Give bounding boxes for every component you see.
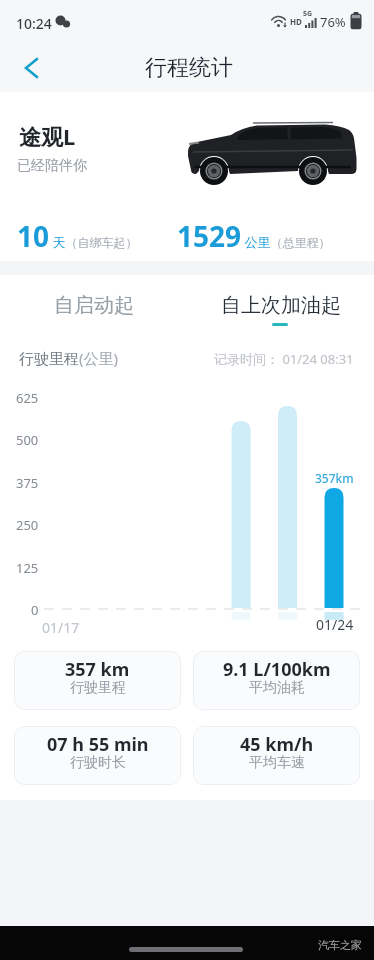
staticText: HD bbox=[290, 16, 302, 27]
staticText: 5G bbox=[303, 9, 313, 19]
button[interactable]: 自上次加油起 bbox=[187, 288, 374, 322]
staticText: 250 bbox=[16, 516, 39, 534]
staticText: 行驶里程(公里) bbox=[19, 348, 119, 368]
staticText: 625 bbox=[16, 389, 39, 407]
staticText: 平均车速 bbox=[249, 754, 305, 772]
staticText: 10:24 bbox=[16, 14, 52, 33]
staticText: 途观L bbox=[19, 121, 76, 151]
staticText: 125 bbox=[16, 559, 39, 577]
button[interactable] bbox=[16, 52, 46, 84]
staticText: 45 km/h bbox=[240, 732, 314, 757]
button[interactable]: 自启动起 bbox=[0, 288, 187, 322]
staticText: 行驶时长 bbox=[70, 754, 126, 772]
staticText: 自启动起 bbox=[54, 293, 134, 318]
staticText: 10 天（自绑车起） bbox=[17, 217, 138, 255]
staticText: 01/24 bbox=[316, 615, 354, 634]
staticText: 记录时间： 01/24 08:31 bbox=[214, 350, 354, 368]
button[interactable]: 9.1 L/100km bbox=[193, 651, 360, 710]
button[interactable]: 357 km bbox=[14, 651, 181, 710]
staticText: 357km bbox=[315, 470, 354, 486]
staticText: 375 bbox=[16, 474, 39, 492]
staticText: 357 km bbox=[65, 657, 130, 682]
staticText: 平均油耗 bbox=[249, 679, 305, 697]
staticText: 0 bbox=[31, 601, 39, 619]
staticText: 汽车之家 bbox=[318, 938, 362, 952]
button[interactable]: 07 h 55 min bbox=[14, 726, 181, 785]
staticText: 01/17 bbox=[42, 618, 80, 637]
staticText: 行驶里程 bbox=[70, 679, 126, 697]
staticText: 07 h 55 min bbox=[47, 732, 149, 757]
staticText: 自上次加油起 bbox=[221, 293, 341, 318]
button[interactable]: 45 km/h bbox=[193, 726, 360, 785]
staticText: 已经陪伴你 bbox=[17, 157, 87, 175]
staticText: 9.1 L/100km bbox=[223, 657, 331, 682]
staticText: 行程统计 bbox=[145, 54, 233, 82]
staticText: 500 bbox=[16, 431, 39, 449]
staticText: 76% bbox=[320, 13, 346, 31]
staticText: 1529 公里（总里程） bbox=[177, 217, 331, 255]
